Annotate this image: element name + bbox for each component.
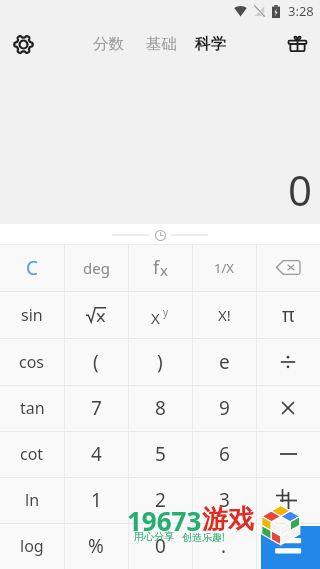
button[interactable]: 8	[128, 385, 192, 431]
button[interactable]: π	[256, 291, 320, 338]
staticText: 19673	[127, 503, 202, 538]
staticText: x	[160, 260, 168, 280]
staticText: 1/X	[214, 259, 234, 277]
staticText: C	[26, 255, 39, 281]
staticText: X!	[218, 305, 231, 325]
button[interactable]: e	[192, 338, 256, 385]
button[interactable]: 1/X	[192, 244, 256, 291]
staticText: 3:28	[288, 2, 314, 20]
button[interactable]: 7	[64, 385, 128, 431]
staticText: 科学	[195, 34, 226, 54]
staticText: 8	[155, 395, 166, 421]
button[interactable]: 分数	[91, 30, 126, 58]
staticText: 6	[219, 441, 230, 467]
staticText: )	[157, 349, 163, 375]
staticText: .	[221, 533, 227, 559]
button[interactable]: 基础	[144, 30, 179, 58]
staticText: 9	[219, 395, 230, 421]
button[interactable]: 科学	[193, 30, 228, 58]
button[interactable]: 3	[192, 477, 256, 523]
button[interactable]	[256, 431, 320, 477]
staticText: X	[151, 308, 160, 328]
staticText: π	[282, 302, 295, 328]
button[interactable]: X	[128, 291, 192, 338]
staticText: 4	[91, 441, 102, 467]
button[interactable]: X!	[192, 291, 256, 338]
staticText: (	[93, 349, 99, 375]
button[interactable]: .	[192, 523, 256, 569]
staticText: f	[153, 255, 160, 280]
staticText: 2	[155, 487, 166, 513]
button[interactable]: 0	[128, 523, 192, 569]
staticText: %	[88, 533, 104, 559]
staticText: 游戏	[202, 503, 254, 536]
button[interactable]: sin	[0, 291, 64, 338]
button[interactable]: 9	[192, 385, 256, 431]
button[interactable]: 6	[192, 431, 256, 477]
staticText: ln	[25, 489, 40, 511]
staticText: tan	[20, 397, 45, 419]
staticText: 7	[91, 395, 102, 421]
staticText: deg	[83, 258, 110, 278]
staticText: e	[219, 349, 230, 375]
button[interactable]: 2	[128, 477, 192, 523]
other: Clear	[0, 244, 64, 291]
staticText: 0	[288, 161, 313, 218]
button[interactable]: Settings	[7, 28, 39, 60]
staticText: 5	[155, 441, 166, 467]
staticText: 基础	[146, 34, 177, 54]
button[interactable]: cot	[0, 431, 64, 477]
staticText: cot	[20, 443, 44, 465]
button[interactable]: deg	[64, 244, 128, 291]
button[interactable]: Gift	[281, 28, 313, 60]
button[interactable]: 5	[128, 431, 192, 477]
button[interactable]: History	[152, 227, 168, 243]
button[interactable]: 4	[64, 431, 128, 477]
button[interactable]: )	[128, 338, 192, 385]
staticText: 分数	[93, 34, 124, 54]
button[interactable]	[256, 477, 320, 523]
staticText: 3	[219, 487, 230, 513]
staticText: log	[20, 535, 44, 557]
button[interactable]	[64, 291, 128, 338]
button[interactable]: log	[0, 523, 64, 569]
staticText: cos	[19, 351, 45, 373]
button[interactable]	[256, 523, 320, 569]
button[interactable]: f	[128, 244, 192, 291]
button[interactable]	[256, 385, 320, 431]
button[interactable]: Clear	[0, 244, 64, 291]
button[interactable]: 1	[64, 477, 128, 523]
button[interactable]: cos	[0, 338, 64, 385]
other: Backspace	[256, 244, 320, 291]
staticText: y	[163, 305, 169, 319]
button[interactable]: Backspace	[256, 244, 320, 291]
staticText: sin	[21, 304, 43, 326]
button[interactable]: %	[64, 523, 128, 569]
button[interactable]: ln	[0, 477, 64, 523]
button[interactable]	[256, 338, 320, 385]
button[interactable]: tan	[0, 385, 64, 431]
staticText: 1	[91, 487, 102, 513]
staticText: 创造乐趣!	[182, 530, 225, 544]
staticText: 用心分享	[134, 530, 174, 543]
button[interactable]: (	[64, 338, 128, 385]
staticText: 0	[155, 533, 166, 559]
